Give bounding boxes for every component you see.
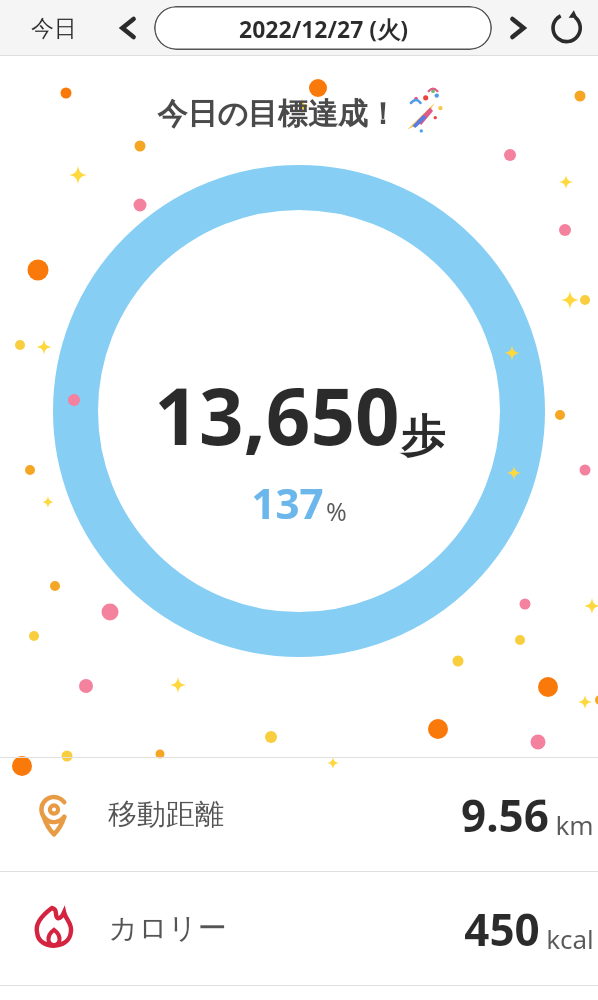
staticText: 2022/12/27 (火) [239,13,408,44]
staticText: 450 [464,899,540,959]
staticText: km [555,807,594,842]
staticText: 今日 [31,14,77,43]
button[interactable]: 前の日 [102,0,154,56]
button[interactable]: カロリー [0,872,598,985]
staticText: % [326,494,347,528]
staticText: 9.56 [461,785,549,845]
button[interactable]: 今日 [6,0,102,56]
button[interactable]: 次の日 [492,0,544,56]
button[interactable]: 2022/12/27 (火) [154,6,492,50]
staticText: 137 [251,474,324,531]
staticText: kcal [546,921,594,956]
staticText: 今日の目標達成！ [157,95,398,133]
staticText: 移動距離 [108,796,224,833]
staticText: カロリー [108,910,227,947]
staticText: 13,650 [154,362,400,468]
button[interactable]: 更新 [544,0,592,56]
button[interactable]: 移動距離 [0,758,598,871]
staticText: 歩 [401,409,445,464]
